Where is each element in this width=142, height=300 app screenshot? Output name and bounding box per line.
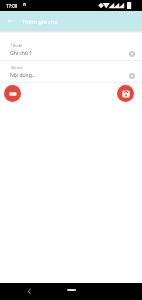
staticText: 17:09 <box>6 3 18 9</box>
staticText: Thêm ghi chú <box>22 18 58 25</box>
button[interactable]: Clear <box>126 70 138 82</box>
button[interactable]: Ghi chú <box>0 60 142 82</box>
button[interactable]: Delete <box>4 85 21 102</box>
staticText: Ghi chú <box>11 66 23 70</box>
staticText: Tiêu đề <box>11 44 22 48</box>
button[interactable]: Save <box>117 85 134 102</box>
button[interactable]: Clear <box>126 48 138 60</box>
button[interactable]: Tiêu đề <box>0 38 142 60</box>
button[interactable]: Back <box>3 14 16 27</box>
staticText: Nội dung... <box>10 72 36 79</box>
button[interactable]: Back <box>23 285 36 298</box>
staticText: Ghi chú 1 <box>10 50 33 57</box>
